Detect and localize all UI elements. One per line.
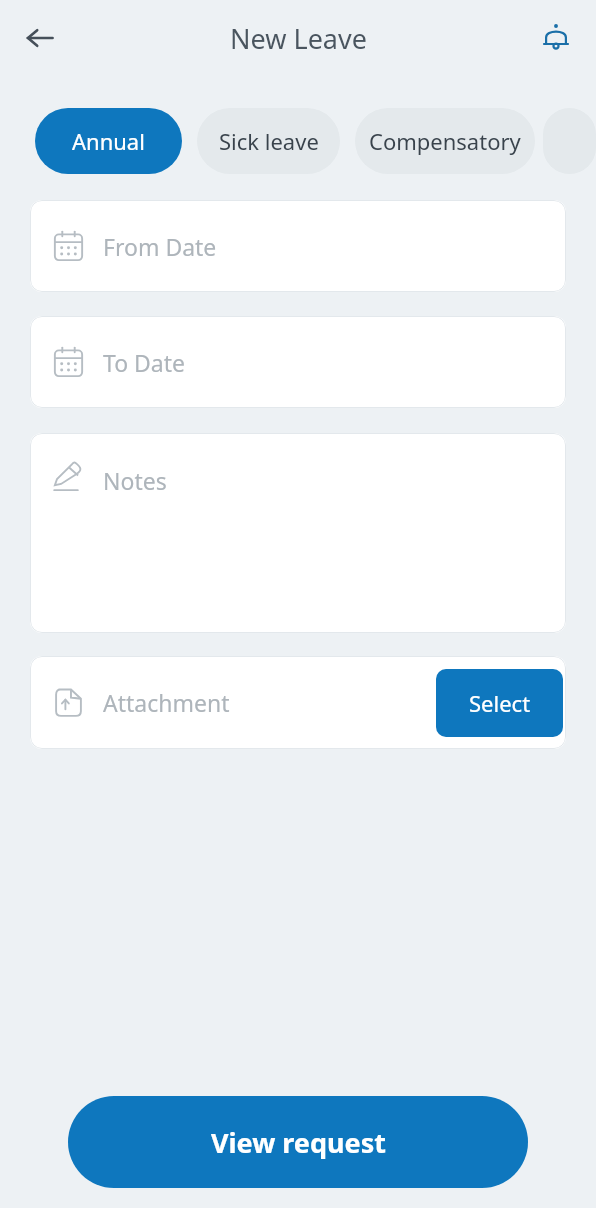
staticText: New Leave bbox=[230, 20, 367, 57]
button[interactable]: To Date bbox=[30, 316, 566, 408]
staticText: Annual bbox=[72, 126, 145, 156]
button[interactable]: Attachment bbox=[30, 656, 566, 749]
button[interactable]: Annual bbox=[35, 108, 182, 174]
button[interactable]: Notes bbox=[30, 433, 566, 633]
staticText: To Date bbox=[103, 347, 186, 378]
button[interactable]: Select bbox=[436, 669, 563, 737]
staticText: Notes bbox=[103, 465, 167, 496]
button[interactable]: Notifications bbox=[532, 14, 580, 62]
staticText: Select bbox=[469, 688, 531, 718]
button[interactable] bbox=[543, 108, 596, 174]
button[interactable]: Back bbox=[16, 14, 64, 62]
staticText: Sick leave bbox=[219, 126, 319, 156]
staticText: View request bbox=[211, 1124, 386, 1161]
staticText: From Date bbox=[103, 231, 217, 262]
button[interactable]: View request bbox=[68, 1096, 528, 1188]
button[interactable]: From Date bbox=[30, 200, 566, 292]
button[interactable]: Sick leave bbox=[197, 108, 340, 174]
staticText: Compensatory bbox=[369, 126, 521, 156]
staticText: Attachment bbox=[103, 687, 230, 718]
button[interactable]: Compensatory bbox=[355, 108, 535, 174]
